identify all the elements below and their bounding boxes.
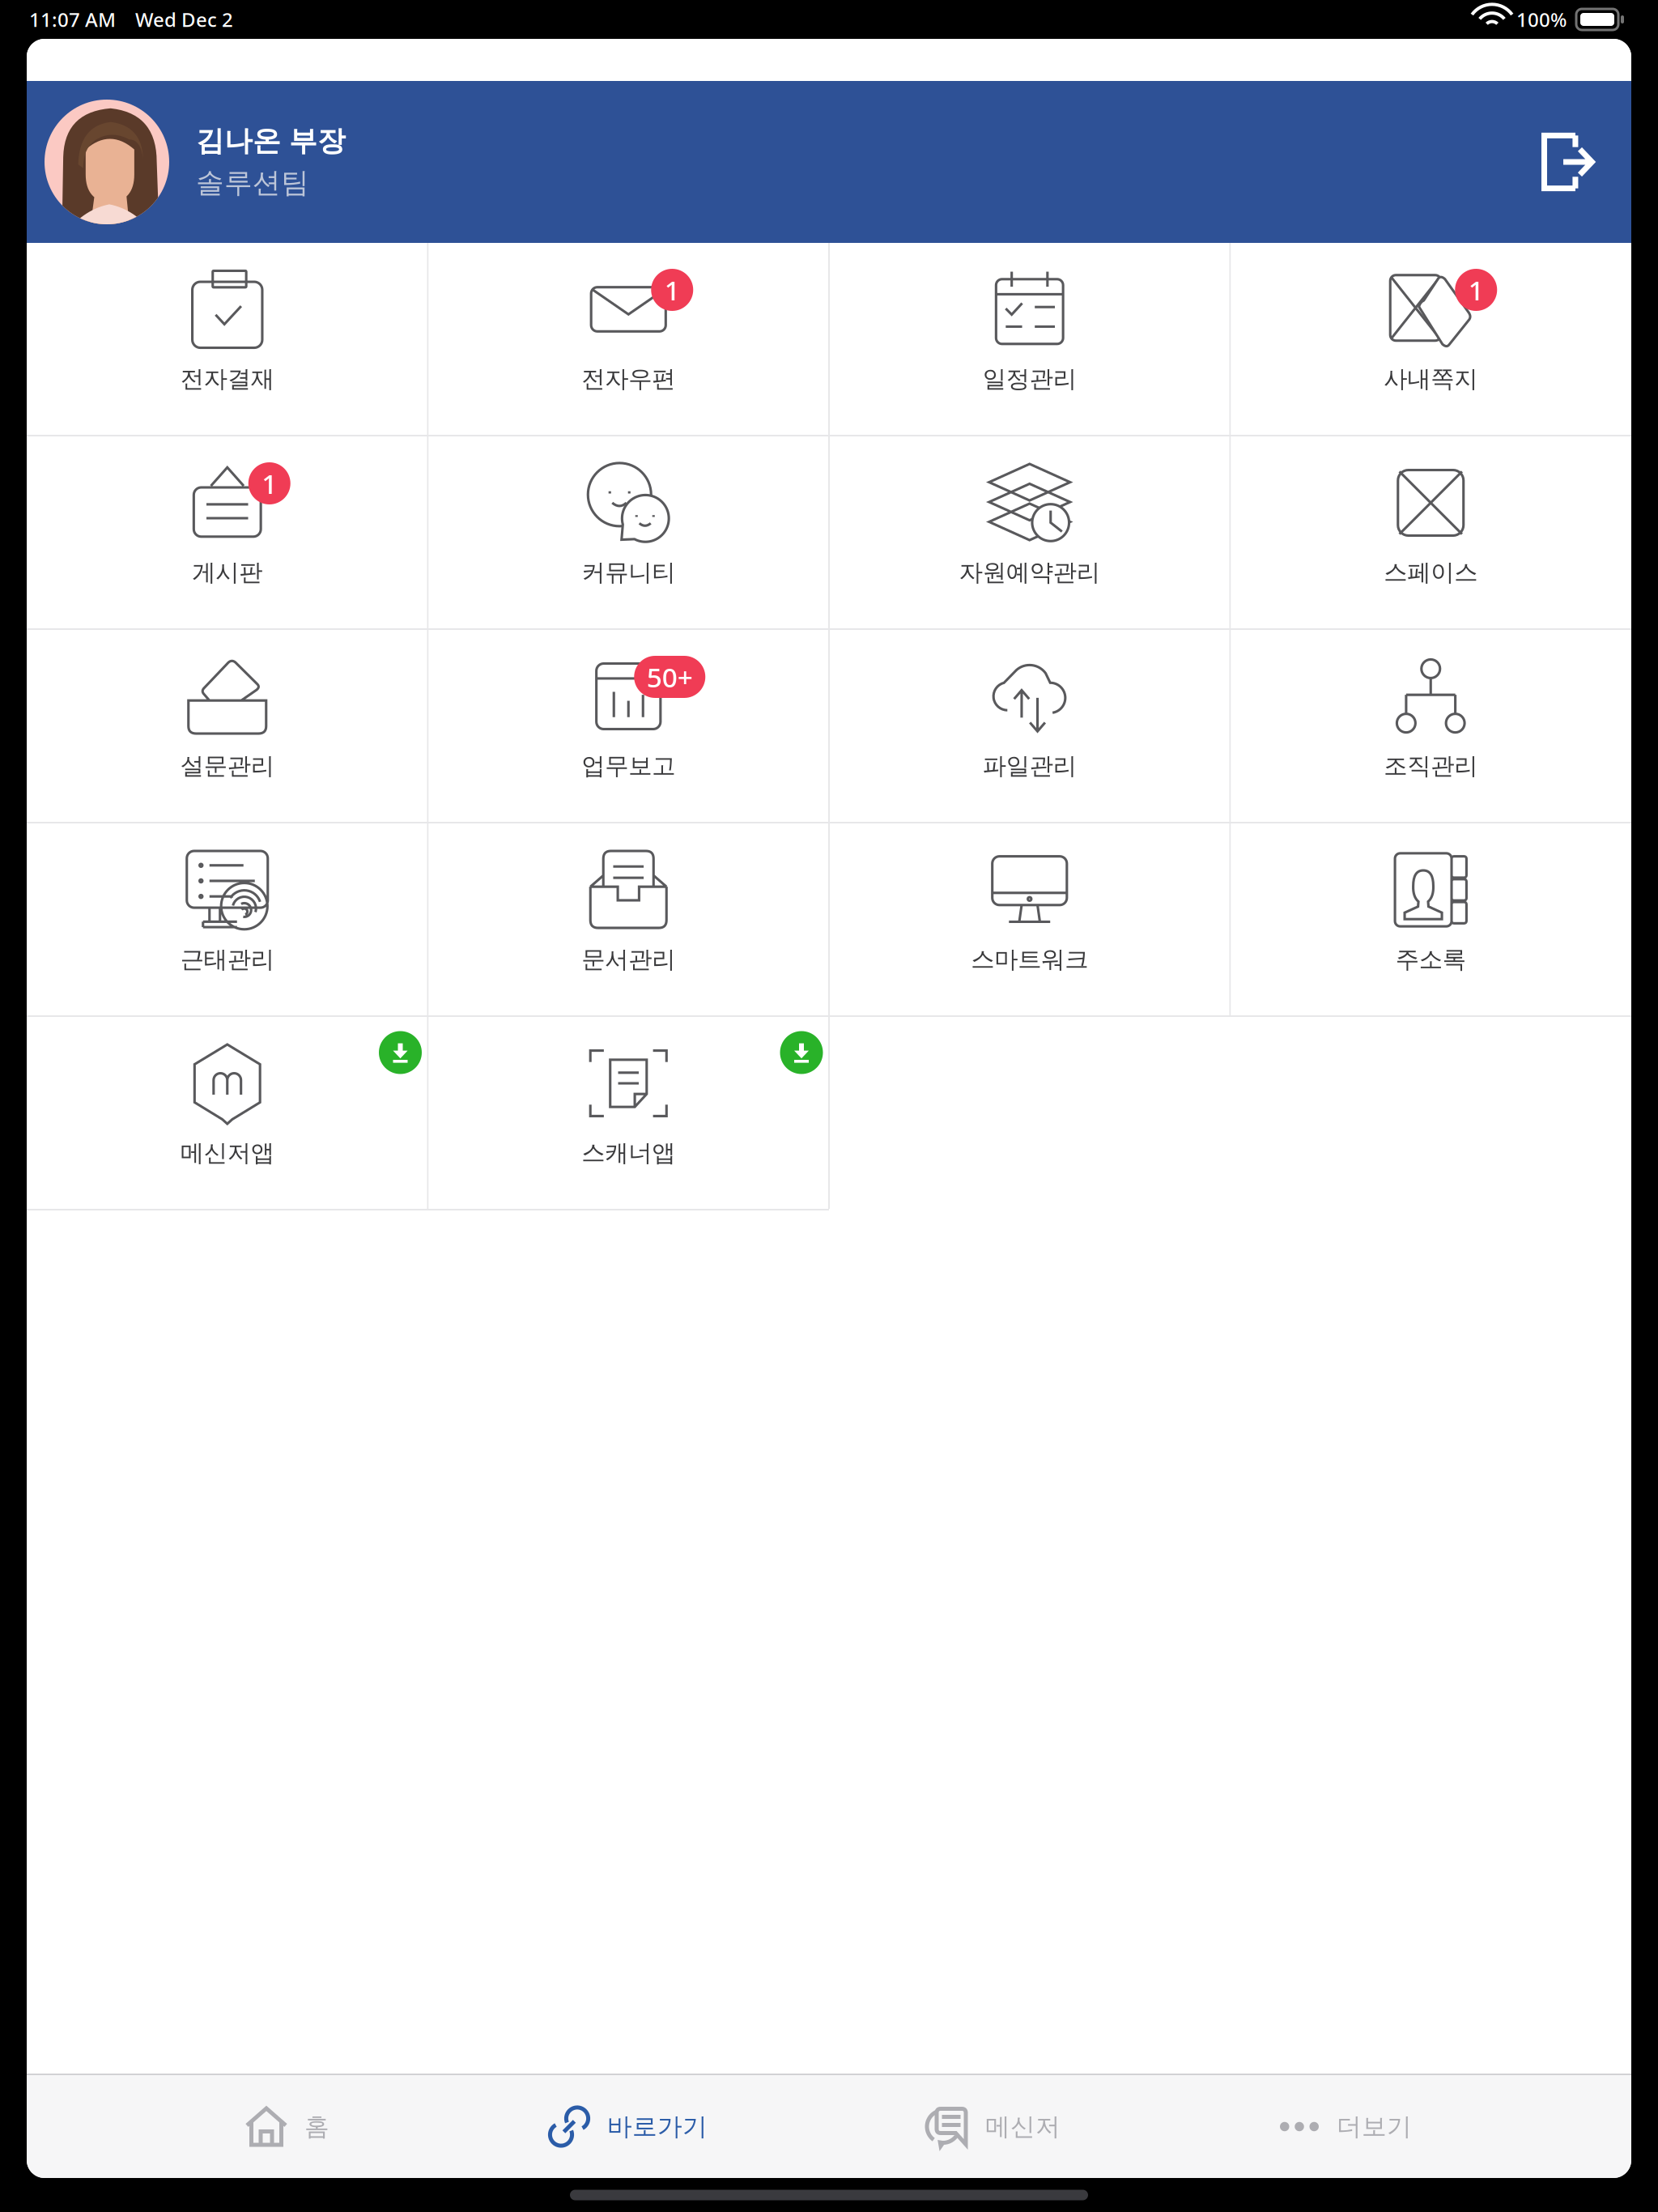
staticText: 100%	[1516, 7, 1567, 32]
staticText: 조직관리	[1384, 751, 1478, 781]
staticText: 커뮤니티	[581, 558, 675, 587]
staticText: 1	[1468, 272, 1484, 308]
staticText: 더보기	[1337, 2111, 1412, 2142]
staticText: 자원예약관리	[959, 558, 1100, 587]
button[interactable]: 홈	[246, 2076, 329, 2178]
button[interactable]: 더보기	[1280, 2081, 1412, 2173]
button[interactable]: 업무보고	[429, 630, 828, 822]
button[interactable]: 근태관리	[28, 823, 427, 1015]
staticText: 전자결재	[180, 364, 274, 393]
button[interactable]: 문서관리	[429, 823, 828, 1015]
button[interactable]: 일정관리	[830, 243, 1229, 435]
staticText: 메신저	[985, 2111, 1061, 2142]
staticText: 솔루션팀	[196, 166, 309, 200]
staticText: 바로가기	[607, 2111, 708, 2142]
staticText: 게시판	[192, 558, 262, 587]
staticText: 스캐너앱	[581, 1138, 675, 1168]
button[interactable]: 전자우편	[429, 243, 828, 435]
staticText: Wed Dec 2	[135, 7, 233, 32]
button[interactable]: 스캐너앱	[429, 1017, 828, 1209]
staticText: 메신저앱	[180, 1138, 274, 1168]
button[interactable]: 자원예약관리	[830, 436, 1229, 628]
button[interactable]: 파일관리	[830, 630, 1229, 822]
staticText: 사내쪽지	[1384, 364, 1478, 393]
staticText: 스페이스	[1384, 558, 1478, 587]
staticText: 1	[262, 465, 277, 501]
staticText: 문서관리	[581, 945, 675, 974]
button[interactable]: 스마트워크	[830, 823, 1229, 1015]
button[interactable]: 사내쪽지	[1231, 243, 1630, 435]
staticText: 설문관리	[180, 751, 274, 781]
staticText: 스마트워크	[971, 945, 1088, 974]
button[interactable]: 메신저앱	[28, 1017, 427, 1209]
staticText: 파일관리	[983, 751, 1077, 781]
staticText: 전자우편	[581, 364, 675, 393]
button[interactable]: 로그아웃	[1521, 110, 1613, 214]
button[interactable]: 게시판	[28, 436, 427, 628]
staticText: 주소록	[1396, 945, 1466, 974]
staticText: 김나온 부장	[196, 124, 346, 158]
button[interactable]: 조직관리	[1231, 630, 1630, 822]
staticText: 11:07 AM	[29, 7, 116, 32]
button[interactable]: 전자결재	[28, 243, 427, 435]
button[interactable]: 커뮤니티	[429, 436, 828, 628]
staticText: 1	[664, 272, 680, 308]
button[interactable]: 주소록	[1231, 823, 1630, 1015]
staticText: 근태관리	[180, 945, 274, 974]
staticText: 홈	[304, 2111, 329, 2142]
button[interactable]: 메신저	[927, 2076, 1061, 2178]
button[interactable]: 설문관리	[28, 630, 427, 822]
staticText: 50+	[647, 659, 693, 695]
staticText: 업무보고	[581, 751, 675, 781]
button[interactable]: 스페이스	[1231, 436, 1630, 628]
button[interactable]: 바로가기	[549, 2076, 708, 2178]
staticText: 일정관리	[983, 364, 1077, 393]
